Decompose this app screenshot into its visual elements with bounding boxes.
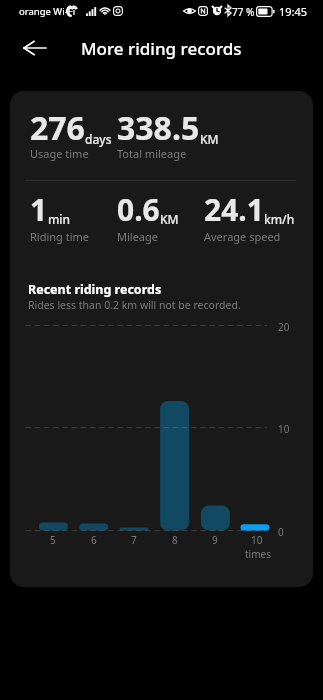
staticText: Mileage: [117, 229, 158, 244]
staticText: Average speed: [204, 229, 281, 244]
staticText: Total mileage: [117, 146, 187, 161]
staticText: 8: [172, 533, 178, 547]
staticText: 0: [278, 525, 284, 539]
staticText: days: [85, 131, 112, 147]
staticText: 19:45: [279, 4, 308, 19]
staticText: times: [245, 547, 271, 561]
staticText: 5: [50, 533, 56, 547]
staticText: Rides less than 0.2 km will not be recor…: [28, 298, 241, 312]
staticText: More riding records: [81, 37, 242, 60]
staticText: Usage time: [30, 146, 89, 161]
staticText: 0.6: [117, 189, 160, 230]
staticText: 338.5: [117, 106, 200, 150]
staticText: 7: [131, 533, 137, 547]
staticText: 24.1: [204, 189, 264, 230]
staticText: 10: [278, 422, 290, 436]
staticText: 20: [278, 320, 290, 334]
staticText: min: [48, 211, 71, 227]
staticText: km/h: [264, 211, 295, 227]
staticText: 1: [30, 189, 48, 230]
staticText: 9: [212, 533, 218, 547]
staticText: 10: [251, 533, 263, 547]
staticText: 276: [30, 106, 85, 150]
button[interactable]: Back: [14, 36, 56, 60]
staticText: orange Wi-Fi: [19, 5, 76, 18]
staticText: 6: [91, 533, 97, 547]
staticText: KM: [200, 131, 219, 147]
staticText: KM: [160, 211, 179, 227]
staticText: Riding time: [30, 229, 90, 244]
staticText: 77 %: [232, 5, 255, 19]
staticText: Recent riding records: [28, 281, 162, 298]
